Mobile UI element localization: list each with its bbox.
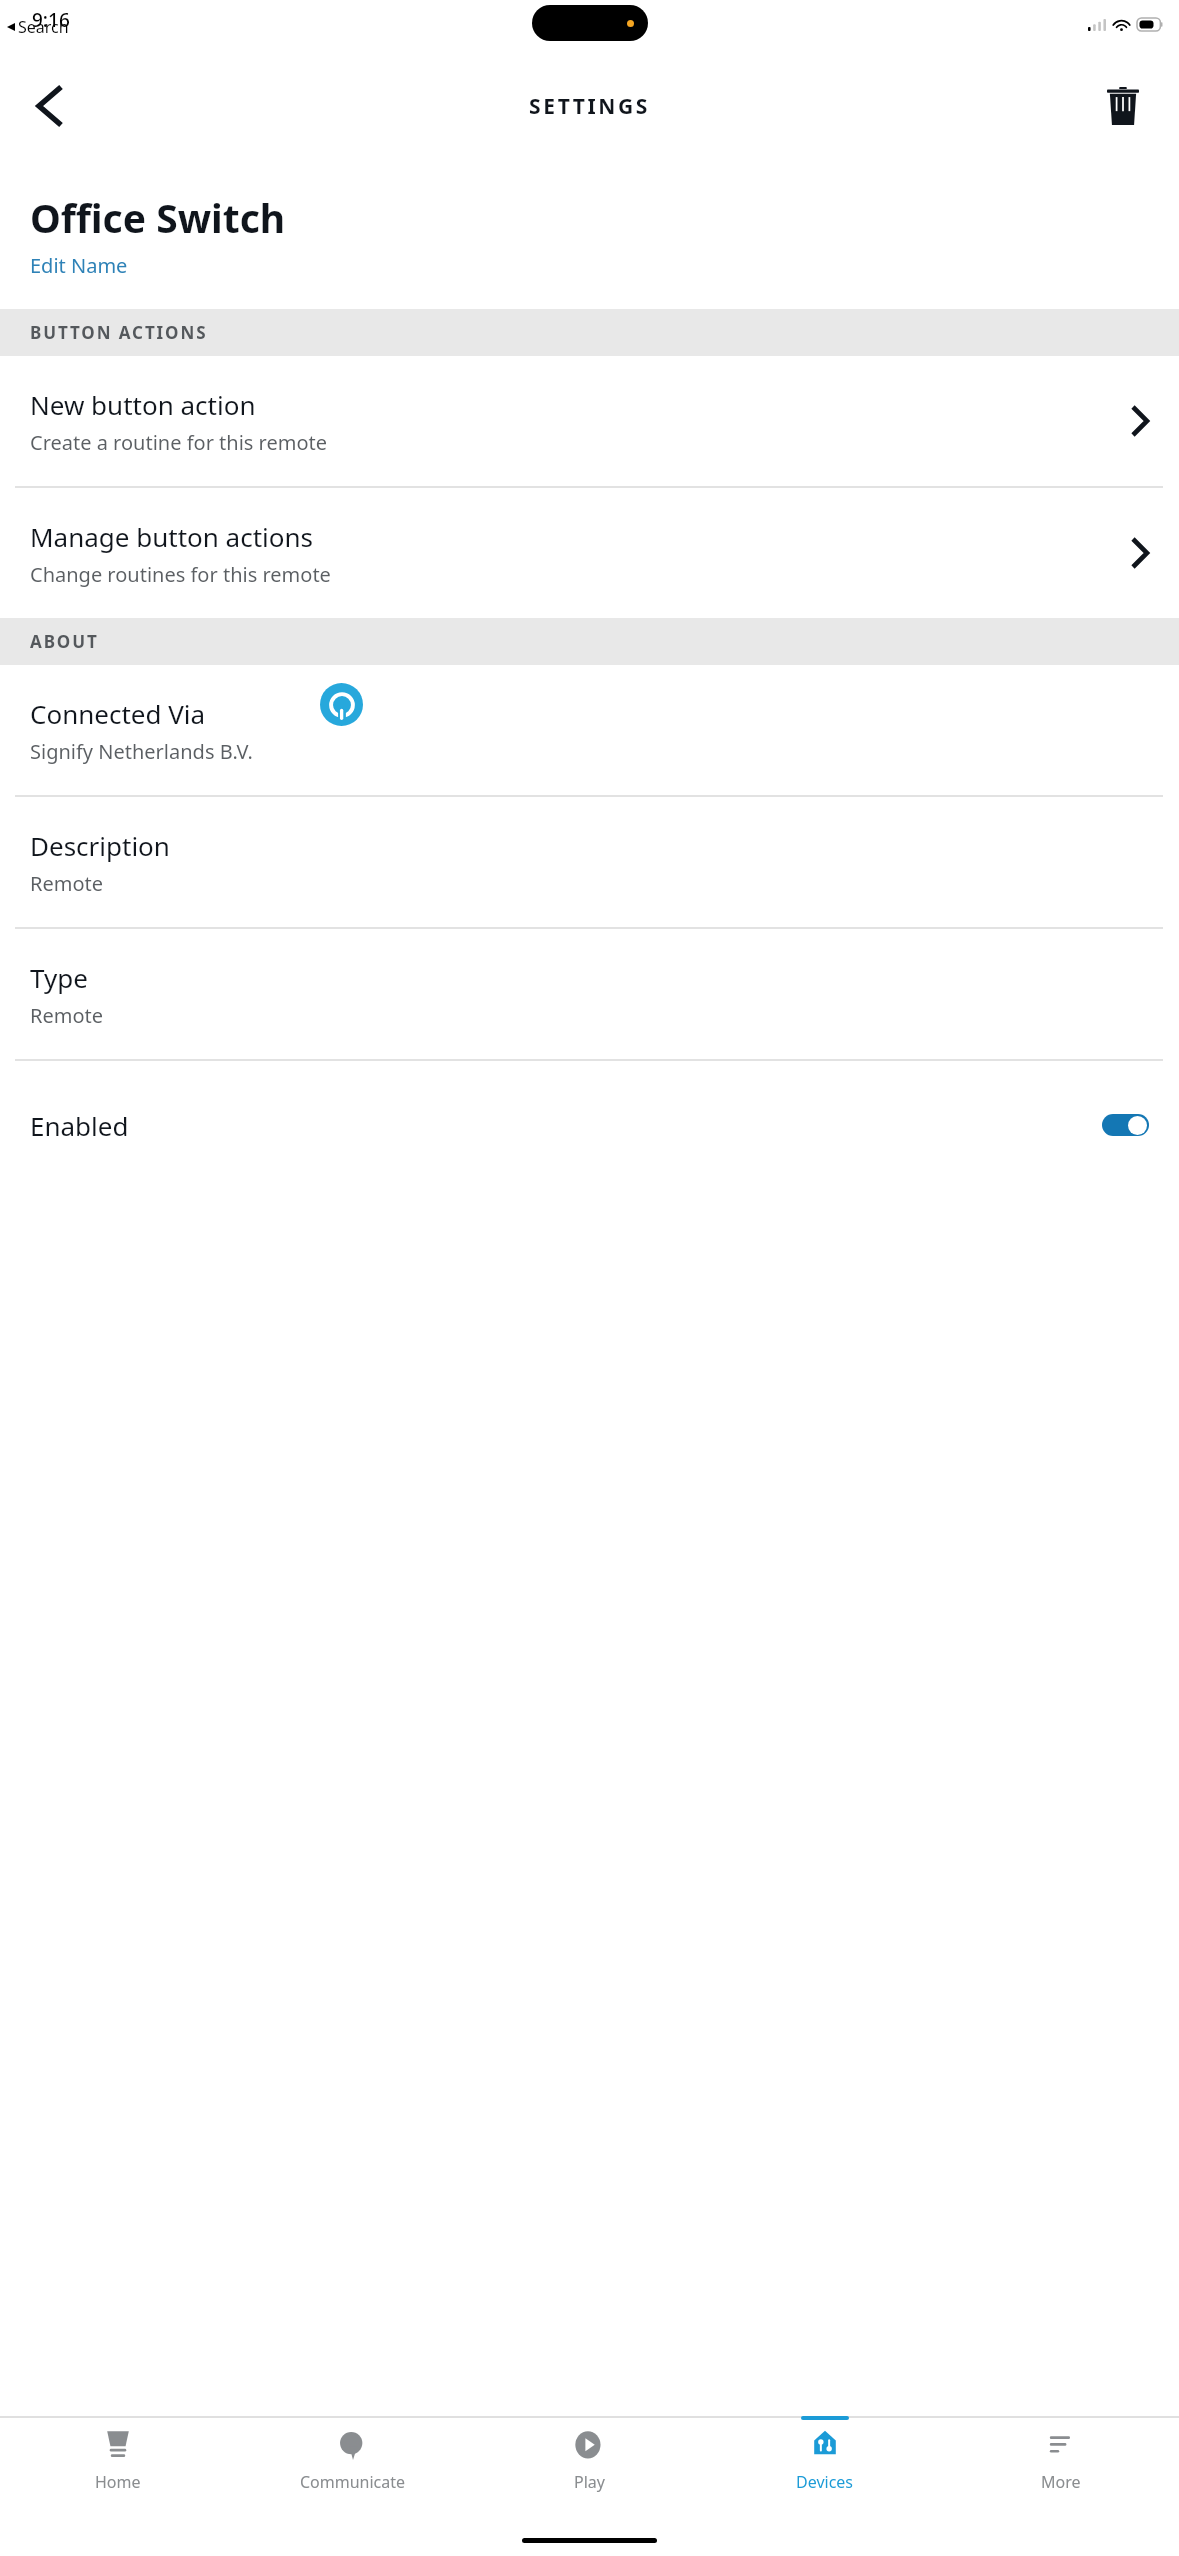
staticText: Home	[95, 2471, 141, 2493]
button[interactable]: Play	[471, 2416, 707, 2523]
staticText: Remote	[30, 1002, 104, 1029]
button[interactable]: New button action	[0, 356, 1179, 486]
staticText: Edit Name	[30, 252, 128, 279]
staticText: BUTTON ACTIONS	[30, 321, 208, 344]
button[interactable]: Alexa	[320, 683, 363, 726]
button[interactable]: Enabled	[0, 1061, 1179, 1189]
staticText: Play	[574, 2471, 605, 2493]
staticText: More	[1041, 2471, 1081, 2493]
staticText: Communicate	[300, 2471, 406, 2493]
staticText: 9:16	[32, 7, 70, 33]
staticText: Change routines for this remote	[30, 561, 331, 588]
staticText: Signify Netherlands B.V.	[30, 738, 253, 765]
staticText: Type	[30, 960, 88, 995]
staticText: Connected Via	[30, 696, 206, 731]
button[interactable]: Back	[18, 74, 82, 138]
button[interactable]: Delete	[1093, 76, 1153, 136]
staticText: Office Switch	[30, 191, 286, 244]
staticText: Manage button actions	[30, 519, 314, 554]
staticText: Description	[30, 828, 170, 863]
button[interactable]: Devices	[707, 2416, 943, 2523]
staticText: New button action	[30, 387, 256, 422]
staticText: Create a routine for this remote	[30, 429, 328, 456]
button[interactable]: Communicate	[235, 2416, 471, 2523]
button[interactable]: Manage button actions	[0, 488, 1179, 618]
button[interactable]: Home	[0, 2416, 235, 2523]
staticText: Remote	[30, 870, 104, 897]
staticText: Devices	[796, 2471, 854, 2493]
staticText: Enabled	[30, 1108, 1102, 1143]
button[interactable]: Edit Name	[30, 252, 128, 279]
staticText: ABOUT	[30, 630, 99, 653]
staticText: SETTINGS	[529, 92, 650, 121]
button[interactable]: More	[943, 2416, 1179, 2523]
staticText: Search	[18, 16, 69, 38]
